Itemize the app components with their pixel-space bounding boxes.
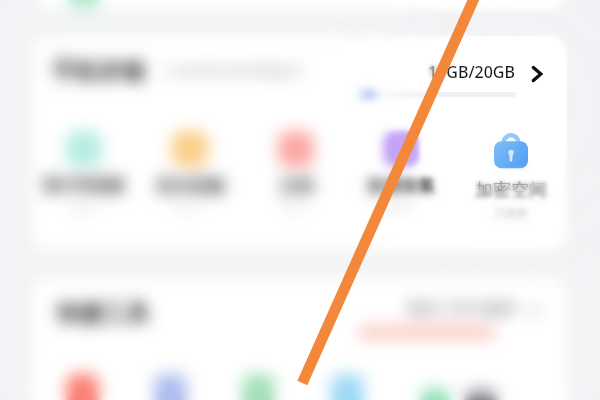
- staticText: 24 个: [349, 200, 453, 215]
- staticText: 快捷工具: [57, 299, 149, 328]
- button[interactable]: 加密空间: [459, 128, 563, 220]
- staticText: 19GB/20GB: [428, 61, 515, 83]
- staticText: 24 个: [349, 200, 453, 215]
- staticText: 音乐音频: [138, 176, 242, 197]
- staticText: 36 个: [138, 200, 242, 215]
- button[interactable]: 更多工具与服务: [394, 291, 562, 333]
- button[interactable]: 音乐音频: [138, 123, 242, 219]
- button[interactable]: 更多工具与服务: [394, 291, 562, 333]
- staticText: 已使用空间及明细统计: [166, 63, 306, 81]
- staticText: 图片和视频: [32, 176, 136, 196]
- staticText: 已使用空间及明细统计: [166, 63, 306, 81]
- staticText: 已加密: [459, 206, 563, 220]
- button[interactable]: 查看存储详情: [525, 63, 547, 85]
- staticText: 加密空间: [459, 179, 563, 202]
- staticText: 图片和视频: [32, 176, 136, 196]
- staticText: 快捷工具: [57, 299, 149, 328]
- button[interactable]: 加密空间: [459, 128, 563, 220]
- button[interactable]: 图片和视频: [32, 123, 136, 219]
- button[interactable]: 图片和视频: [32, 123, 136, 219]
- button[interactable]: [32, 0, 567, 10]
- button[interactable]: [32, 50, 567, 102]
- staticText: 36 个: [138, 200, 242, 215]
- staticText: 快捷工具: [57, 299, 149, 328]
- button[interactable]: [32, 50, 567, 102]
- button[interactable]: 文档: [244, 123, 348, 219]
- staticText: 19GB/20GB: [428, 61, 515, 83]
- button[interactable]: 查看存储详情: [525, 63, 547, 85]
- button[interactable]: [32, 50, 567, 102]
- staticText: 手机存储: [52, 57, 144, 86]
- staticText: 文档: [244, 176, 348, 197]
- button[interactable]: 应用安装: [349, 123, 453, 219]
- button[interactable]: 查看存储详情: [525, 63, 547, 85]
- button[interactable]: 更多工具与服务: [394, 291, 562, 333]
- staticText: 36 个: [138, 200, 242, 215]
- staticText: 19GB/20GB: [428, 61, 515, 83]
- button[interactable]: 文档: [244, 123, 348, 219]
- button[interactable]: [32, 0, 567, 10]
- staticText: 52 个: [244, 200, 348, 215]
- staticText: 快捷工具: [57, 299, 149, 328]
- button[interactable]: 加密空间: [459, 128, 563, 220]
- staticText: 128 个: [32, 200, 136, 215]
- button[interactable]: 更多工具与服务: [394, 291, 562, 333]
- staticText: 音乐音频: [138, 176, 242, 197]
- button[interactable]: 加密空间: [459, 128, 563, 220]
- staticText: 已加密: [459, 206, 563, 220]
- staticText: 加密空间: [459, 179, 563, 202]
- staticText: 文档: [244, 176, 348, 197]
- staticText: 手机存储: [52, 57, 144, 86]
- staticText: 36 个: [138, 200, 242, 215]
- staticText: 已加密: [459, 206, 563, 220]
- button[interactable]: 音乐音频: [138, 123, 242, 219]
- staticText: 加密空间: [459, 179, 563, 202]
- button[interactable]: 图片和视频: [32, 123, 136, 219]
- button[interactable]: [32, 0, 567, 10]
- staticText: 已加密: [459, 206, 563, 220]
- button[interactable]: 音乐音频: [138, 123, 242, 219]
- button[interactable]: 文档: [244, 123, 348, 219]
- button[interactable]: 图片和视频: [32, 123, 136, 219]
- staticText: 手机存储: [52, 57, 144, 86]
- staticText: 52 个: [244, 200, 348, 215]
- button[interactable]: 图片和视频: [32, 123, 136, 219]
- button[interactable]: 应用安装: [349, 123, 453, 219]
- button[interactable]: 文档: [244, 123, 348, 219]
- staticText: 手机存储: [52, 57, 144, 86]
- button[interactable]: 应用安装: [349, 123, 453, 219]
- button[interactable]: [32, 0, 567, 10]
- staticText: 更多工具与服务: [406, 299, 518, 319]
- button[interactable]: [32, 50, 567, 102]
- button[interactable]: 查看存储详情: [525, 63, 547, 85]
- staticText: 52 个: [244, 200, 348, 215]
- staticText: 应用安装: [349, 176, 453, 197]
- staticText: 更多工具与服务: [406, 299, 518, 319]
- staticText: 更多工具与服务: [406, 299, 518, 319]
- staticText: 36 个: [138, 200, 242, 215]
- staticText: 快捷工具: [57, 299, 149, 328]
- button[interactable]: [32, 0, 567, 10]
- staticText: 24 个: [349, 200, 453, 215]
- button[interactable]: 音乐音频: [138, 123, 242, 219]
- staticText: 应用安装: [349, 176, 453, 197]
- button[interactable]: 音乐音频: [138, 123, 242, 219]
- staticText: 应用安装: [349, 176, 453, 197]
- button[interactable]: 更多工具与服务: [394, 291, 562, 333]
- button[interactable]: 查看存储详情: [525, 63, 547, 85]
- button[interactable]: 文档: [244, 123, 348, 219]
- button[interactable]: 加密空间: [459, 128, 563, 220]
- staticText: 图片和视频: [32, 176, 136, 196]
- staticText: 19GB/20GB: [428, 61, 515, 83]
- staticText: 音乐音频: [138, 176, 242, 197]
- staticText: 更多工具与服务: [406, 299, 518, 319]
- staticText: 24 个: [349, 200, 453, 215]
- button[interactable]: 应用安装: [349, 123, 453, 219]
- staticText: 音乐音频: [138, 176, 242, 197]
- button[interactable]: [32, 50, 567, 102]
- staticText: 128 个: [32, 200, 136, 215]
- staticText: 应用安装: [349, 176, 453, 197]
- button[interactable]: 应用安装: [349, 123, 453, 219]
- staticText: 图片和视频: [32, 176, 136, 196]
- staticText: 已加密: [459, 206, 563, 220]
